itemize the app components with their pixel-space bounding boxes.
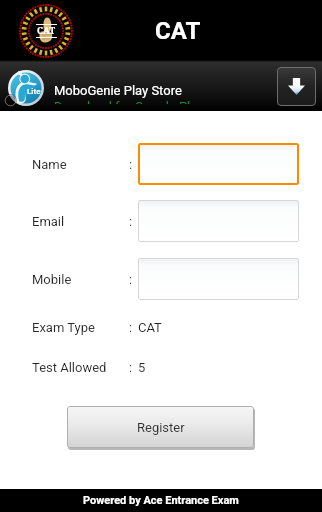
staticText: Name	[32, 157, 67, 172]
button[interactable]: Name	[138, 143, 299, 185]
staticText: MoboGenie Play Store	[54, 83, 182, 98]
staticText: Email	[32, 214, 65, 229]
staticText: CAT	[37, 24, 56, 36]
button[interactable]: Download	[277, 67, 316, 106]
staticText: :	[129, 157, 133, 172]
staticText: :	[129, 360, 133, 375]
staticText: :	[129, 272, 133, 287]
button[interactable]: Lite	[0, 60, 322, 111]
staticText: :	[129, 320, 133, 335]
staticText: Register	[137, 420, 185, 435]
staticText: Exam Type	[32, 320, 95, 335]
staticText: CAT	[155, 17, 201, 45]
button[interactable]: Mobile	[138, 258, 299, 300]
button[interactable]: Email	[138, 200, 299, 242]
staticText: Lite	[27, 87, 41, 96]
staticText: Download for Google Play	[54, 100, 204, 104]
staticText: 5	[138, 360, 146, 375]
staticText: CAT	[138, 320, 162, 335]
staticText: :	[129, 214, 133, 229]
button[interactable]: Register	[67, 406, 254, 448]
staticText: Powered by Ace Entrance Exam	[83, 494, 239, 507]
staticText: Mobile	[32, 272, 72, 287]
staticText: Test Allowed	[32, 360, 107, 375]
